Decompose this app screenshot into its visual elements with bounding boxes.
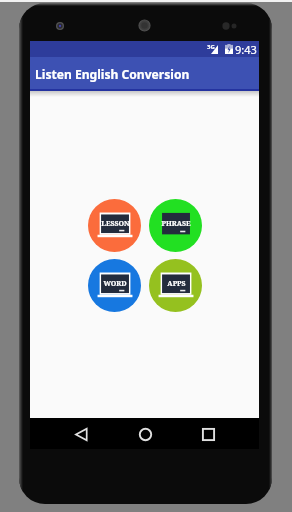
staticText: PHRASE: [161, 219, 191, 229]
staticText: APPS: [167, 279, 186, 289]
button[interactable]: WORD: [88, 259, 141, 312]
button[interactable]: LESSON: [88, 199, 141, 252]
button[interactable]: Back: [68, 421, 94, 447]
staticText: 3G: [207, 43, 215, 51]
staticText: WORD: [103, 279, 127, 289]
button[interactable]: Recent apps: [195, 421, 221, 447]
button[interactable]: APPS: [149, 259, 202, 312]
staticText: Listen English Conversion: [35, 66, 190, 82]
button[interactable]: Home: [132, 421, 158, 447]
staticText: 9:43: [235, 42, 257, 57]
button[interactable]: PHRASE: [149, 199, 202, 252]
staticText: LESSON: [101, 219, 130, 229]
